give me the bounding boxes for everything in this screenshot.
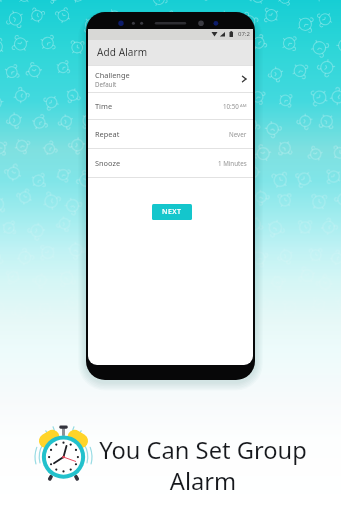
staticText: Default xyxy=(95,80,117,88)
button[interactable]: NEXT xyxy=(152,204,192,220)
staticText: 1 Minutes xyxy=(218,159,247,167)
staticText: You Can Set Group Alarm xyxy=(99,434,307,496)
staticText: Time xyxy=(95,101,113,111)
other: Open challenge xyxy=(237,74,247,84)
staticText: NEXT xyxy=(162,207,182,217)
button[interactable]: Time xyxy=(88,93,253,119)
staticText: Snooze xyxy=(95,158,121,168)
button[interactable]: Challenge xyxy=(88,66,253,92)
staticText: AM xyxy=(240,103,247,109)
staticText: 10:50 xyxy=(223,102,239,110)
button[interactable]: Repeat xyxy=(88,120,253,148)
staticText: Challenge xyxy=(95,70,130,80)
staticText: 07:2 xyxy=(238,30,250,38)
button[interactable]: Add Alarm xyxy=(88,40,253,65)
staticText: Never xyxy=(229,130,247,138)
button[interactable]: Snooze xyxy=(88,149,253,177)
staticText: Repeat xyxy=(95,129,120,139)
staticText: Add Alarm xyxy=(97,45,148,59)
